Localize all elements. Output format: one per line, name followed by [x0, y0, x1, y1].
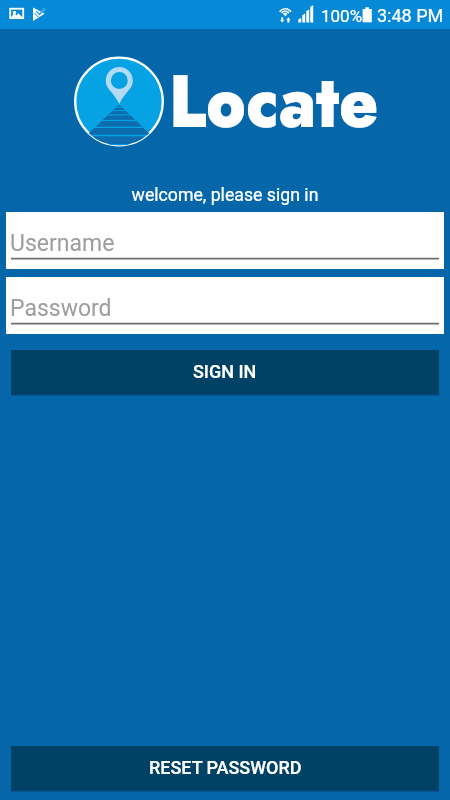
staticText: SIGN IN [193, 361, 257, 382]
button[interactable]: RESET PASSWORD [11, 746, 439, 789]
staticText: 3:48 PM [377, 5, 444, 26]
staticText: RESET PASSWORD [149, 757, 302, 778]
staticText: 100% [321, 6, 363, 26]
staticText: Password [10, 295, 112, 322]
staticText: welcome, please sign in [0, 185, 450, 206]
staticText: Username [10, 230, 115, 257]
button[interactable]: Username [6, 212, 444, 269]
button[interactable]: SIGN IN [11, 350, 439, 393]
button[interactable]: Password [6, 277, 444, 334]
